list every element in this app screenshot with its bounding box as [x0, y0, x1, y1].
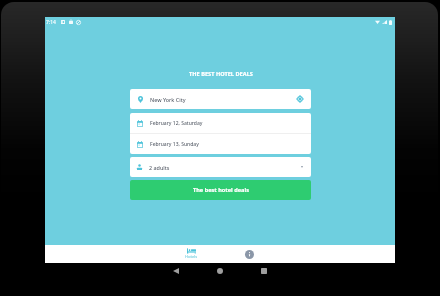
button[interactable]: Recent apps [242, 263, 286, 279]
button[interactable]: Info [234, 245, 264, 263]
button[interactable]: Home [198, 263, 242, 279]
staticText: 7:14 [46, 19, 56, 26]
button[interactable]: February 12, Saturday [130, 113, 311, 133]
button[interactable]: Back [154, 263, 198, 279]
staticText: February 12, Saturday [150, 120, 203, 127]
staticText: The best hotel deals [193, 186, 249, 194]
button[interactable]: 2 adults [130, 157, 311, 177]
staticText: Hotels [185, 254, 198, 260]
button[interactable]: February 13, Sunday [130, 134, 311, 154]
staticText: February 13, Sunday [150, 141, 199, 148]
button[interactable]: The best hotel deals [130, 180, 311, 200]
button[interactable]: Hotels [176, 245, 207, 263]
other: Use my location [296, 95, 304, 103]
staticText: 2 adults [149, 164, 170, 171]
button[interactable]: New York City [130, 89, 311, 109]
staticText: New York City [150, 96, 186, 103]
staticText: THE BEST HOTEL DEALS [189, 70, 253, 78]
